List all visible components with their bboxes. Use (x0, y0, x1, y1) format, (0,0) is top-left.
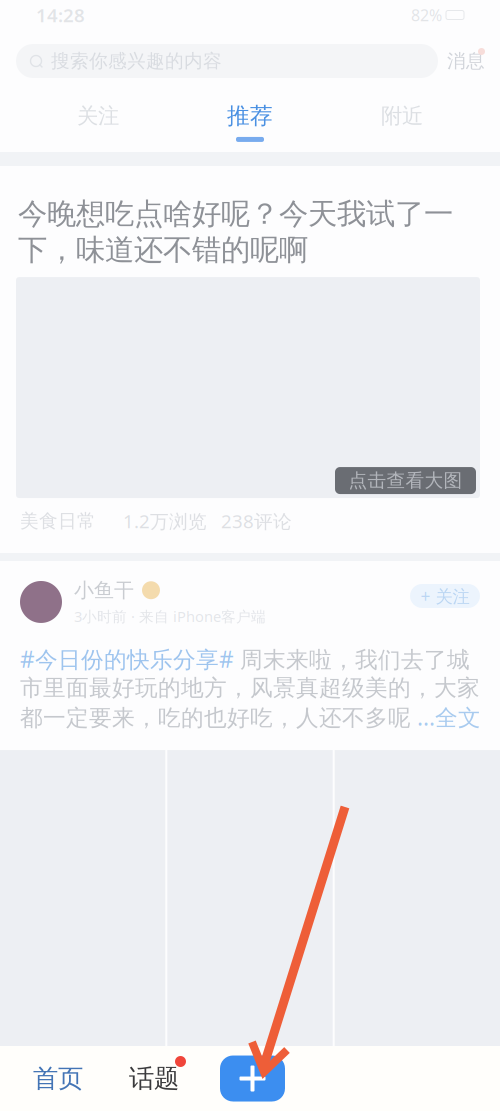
staticText: 238评论 (221, 509, 292, 533)
staticText: 话题 (129, 1063, 179, 1094)
staticText: 附近 (381, 103, 423, 129)
staticText: + 关注 (420, 584, 469, 607)
staticText: 关注 (77, 103, 119, 129)
button[interactable]: 消息 (446, 44, 486, 78)
button[interactable]: 首页 (32, 1046, 84, 1111)
staticText: 搜索你感兴趣的内容 (51, 49, 222, 72)
staticText: #今日份的快乐分享# 周末来啦，我们去了城市里面最好玩的地方，风景真超级美的，大… (20, 644, 481, 732)
staticText: 今晚想吃点啥好呢？今天我试了一下，味道还不错的呢啊 (18, 196, 453, 268)
staticText: 推荐 (227, 102, 273, 130)
staticText: 点击查看大图 (348, 469, 462, 492)
button[interactable]: 附近 (326, 92, 478, 152)
staticText: 1.2万浏览 (123, 509, 207, 533)
staticText: 82% (411, 4, 442, 26)
button[interactable]: 发布 (220, 1055, 285, 1101)
staticText: 首页 (33, 1063, 83, 1094)
staticText: 14:28 (36, 3, 85, 27)
button[interactable]: 关注 (22, 92, 174, 152)
button[interactable]: 推荐 (174, 92, 326, 152)
staticText: 3小时前 · 来自 iPhone客户端 (74, 606, 266, 626)
button[interactable]: 搜索你感兴趣的内容 (16, 44, 438, 78)
button[interactable]: + 关注 (410, 584, 480, 620)
button[interactable]: 话题 (128, 1046, 180, 1111)
staticText: 美食日常 (20, 510, 96, 532)
staticText: 消息 (447, 49, 485, 72)
staticText: 小鱼干 (74, 578, 134, 603)
